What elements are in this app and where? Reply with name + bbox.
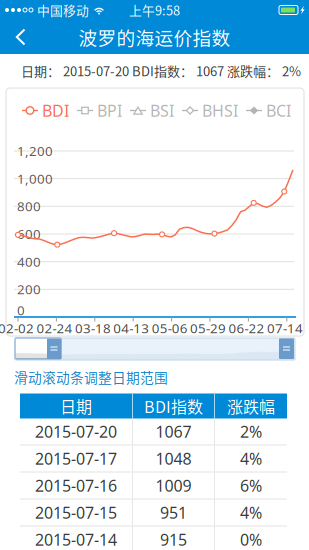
staticText: BPI (97, 100, 122, 121)
staticText: 1,000 (17, 170, 53, 187)
staticText: 4% (240, 502, 262, 523)
staticText: 02-02 (0, 319, 34, 337)
staticText: 日期： 2015-07-20 BDI指数： 1067 涨跌幅： 2% (21, 61, 301, 80)
button[interactable]: 滑动滚动条调整日期范围 (15, 338, 295, 360)
staticText: 2015-07-16 (35, 475, 117, 496)
staticText: 600 (17, 225, 41, 243)
staticText: 1,200 (17, 142, 53, 160)
staticText: 0 (17, 301, 25, 319)
staticText: 滑动滚动条调整日期范围 (14, 367, 168, 387)
staticText: 03-18 (75, 319, 111, 337)
staticText: 2015-07-14 (35, 529, 117, 550)
staticText: 1009 (155, 475, 191, 496)
staticText: 2015-07-17 (35, 448, 117, 469)
staticText: 06-22 (228, 319, 264, 337)
staticText: 2015-07-15 (35, 502, 117, 523)
staticText: 05-06 (152, 319, 188, 337)
staticText: 1048 (155, 448, 191, 469)
staticText: 04-13 (113, 319, 149, 337)
staticText: 上午9:58 (129, 1, 180, 19)
staticText: 02-24 (36, 319, 72, 337)
staticText: 中国移动 (37, 1, 89, 19)
staticText: 05-29 (190, 319, 226, 337)
staticText: 400 (17, 253, 41, 270)
staticText: BDI (42, 100, 69, 121)
staticText: 1067 (155, 421, 191, 442)
staticText: 6% (240, 475, 262, 496)
staticText: 涨跌幅 (227, 394, 275, 418)
staticText: 2015-07-20 (35, 421, 117, 442)
staticText: 4% (240, 448, 262, 469)
staticText: 951 (160, 502, 187, 523)
staticText: BHSI (202, 100, 238, 121)
staticText: 2% (240, 421, 262, 442)
staticText: BDI指数 (144, 394, 203, 418)
button[interactable]: 返回 (0, 20, 42, 54)
staticText: 07-14 (267, 319, 303, 337)
staticText: 波罗的海运价指数 (78, 23, 230, 50)
staticText: BCI (266, 100, 291, 121)
staticText: 0% (240, 529, 262, 550)
staticText: 日期 (60, 394, 92, 418)
staticText: 800 (17, 197, 41, 215)
staticText: 915 (160, 529, 187, 550)
staticText: 200 (17, 280, 41, 298)
staticText: BSI (150, 100, 174, 121)
